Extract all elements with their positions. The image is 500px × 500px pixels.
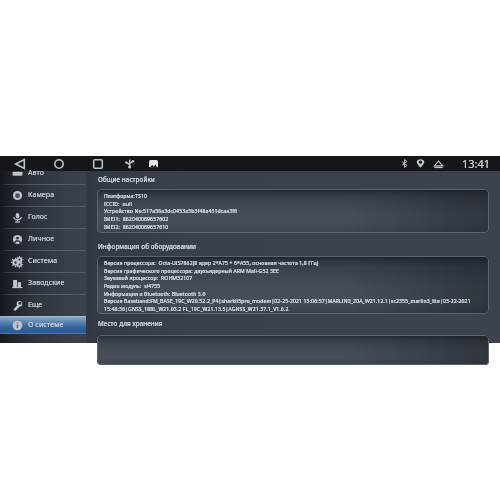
staticText: Голос — [28, 212, 48, 222]
staticText: Платформа:TS10 — [104, 193, 147, 200]
staticText: 13:41 — [462, 156, 491, 171]
button[interactable]: USB — [125, 159, 134, 168]
button[interactable]: Камера — [0, 184, 86, 206]
button[interactable]: Авто — [0, 162, 86, 184]
staticText: Информация о Bluetooth: Bluetooth 5.0 — [104, 291, 206, 298]
button[interactable]: Back — [15, 159, 25, 169]
staticText: О системе — [28, 320, 64, 330]
button[interactable]: Система — [0, 250, 86, 272]
staticText: Система — [28, 256, 58, 266]
staticText: Версия процессора: Octa-UIS7862(8 ядер 2… — [104, 260, 319, 267]
staticText: Версия Baseband:FM_BASE_19C_W20.52.2_P4|… — [104, 298, 471, 305]
staticText: 15:48:36|GNSS_188L_W21.03.2 FL_19C_W21.1… — [104, 306, 289, 313]
staticText: ICCID: null — [104, 201, 132, 208]
button[interactable]: Голос — [0, 206, 86, 228]
staticText: Информация об оборудовании — [98, 242, 197, 251]
staticText: Звуковой процессор: ROHM32107 — [104, 275, 193, 282]
button[interactable]: Recents — [93, 159, 103, 169]
staticText: Еще — [28, 300, 43, 310]
staticText: Авто — [28, 168, 45, 178]
button[interactable]: Home — [54, 159, 64, 169]
button[interactable]: Заводские — [0, 272, 86, 294]
staticText: Общие настройки — [98, 175, 155, 184]
staticText: Версия графического процессора: двухъяде… — [104, 268, 279, 275]
staticText: Заводские — [28, 278, 65, 288]
button[interactable]: Еще — [0, 294, 86, 316]
staticText: IMEI2: 862040069657610 — [104, 224, 169, 231]
button[interactable]: О системе — [0, 316, 86, 334]
button[interactable]: Личное — [0, 228, 86, 250]
staticText: Личное — [28, 234, 55, 244]
staticText: Устройство No:517a56a3dc0453a5b3f48a451d… — [104, 208, 238, 215]
staticText: Камера — [28, 190, 55, 200]
staticText: IMEI1: 862040069657602 — [104, 216, 169, 223]
staticText — [104, 339, 106, 346]
staticText: Радио модуль: sl4755 — [104, 283, 161, 290]
staticText: Место для хранения — [98, 319, 163, 328]
button[interactable]: Screenshot — [149, 160, 158, 169]
